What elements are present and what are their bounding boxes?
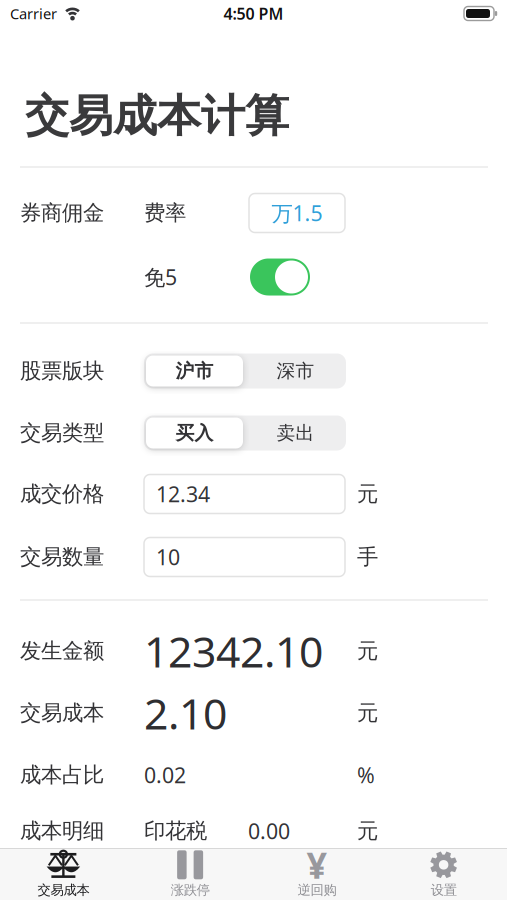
staticText: 涨跌停: [171, 882, 210, 898]
staticText: 成本明细: [20, 818, 104, 844]
staticText: 元: [357, 481, 378, 507]
staticText: 券商佣金: [20, 200, 104, 226]
staticText: 4:50 PM: [223, 3, 283, 24]
staticText: 12342.10: [144, 623, 323, 679]
staticText: 沪市: [175, 359, 213, 382]
staticText: 设置: [431, 882, 457, 898]
button[interactable]: 免5: [250, 258, 310, 295]
staticText: 0.00: [248, 817, 290, 845]
button[interactable]: 交易成本: [0, 849, 127, 899]
staticText: 成交价格: [20, 481, 104, 507]
staticText: 交易成本计算: [25, 89, 289, 143]
staticText: ¥: [306, 841, 327, 889]
button[interactable]: 万1.5: [249, 193, 345, 232]
staticText: 元: [357, 818, 378, 844]
button[interactable]: 深市: [245, 353, 346, 388]
button[interactable]: ¥: [253, 849, 380, 899]
staticText: 10: [156, 543, 180, 571]
staticText: 股票版块: [20, 358, 104, 384]
staticText: 卖出: [276, 421, 314, 444]
staticText: 交易成本: [20, 700, 104, 726]
button[interactable]: 12.34: [144, 474, 345, 513]
staticText: 交易成本: [37, 882, 89, 898]
button[interactable]: 买入: [144, 415, 245, 450]
staticText: 0.02: [144, 761, 186, 789]
button[interactable]: 10: [144, 537, 345, 576]
staticText: 2.10: [144, 685, 227, 741]
staticText: 买入: [175, 421, 213, 444]
staticText: 成本占比: [20, 762, 104, 788]
button[interactable]: 涨跌停: [127, 849, 254, 899]
staticText: 费率: [144, 200, 186, 226]
button[interactable]: 设置: [380, 849, 507, 899]
staticText: 手: [357, 544, 378, 570]
button[interactable]: 卖出: [245, 415, 346, 450]
staticText: 元: [357, 638, 378, 664]
staticText: 免5: [144, 263, 177, 291]
staticText: 交易类型: [20, 420, 104, 446]
staticText: 逆回购: [297, 882, 336, 898]
staticText: 万1.5: [271, 199, 322, 227]
staticText: 印花税: [144, 818, 207, 844]
staticText: Carrier: [10, 4, 57, 23]
staticText: 发生金额: [20, 638, 104, 664]
staticText: %: [357, 761, 375, 789]
staticText: 交易数量: [20, 544, 104, 570]
staticText: 12.34: [156, 480, 210, 508]
staticText: 元: [357, 700, 378, 726]
staticText: 深市: [276, 359, 314, 382]
button[interactable]: 沪市: [144, 353, 245, 388]
